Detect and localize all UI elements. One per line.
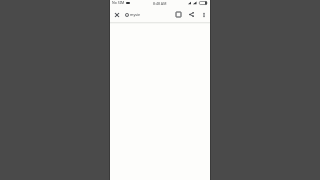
button[interactable]: More options <box>198 9 209 20</box>
button[interactable]: Close <box>110 8 123 21</box>
button[interactable]: Open in browser <box>173 9 184 20</box>
staticText: 8:48 AM <box>153 1 167 6</box>
staticText: mysie <box>130 12 141 17</box>
button[interactable]: Share <box>186 9 197 20</box>
button[interactable]: Page title <box>130 12 141 17</box>
staticText: No SIM <box>112 0 125 5</box>
